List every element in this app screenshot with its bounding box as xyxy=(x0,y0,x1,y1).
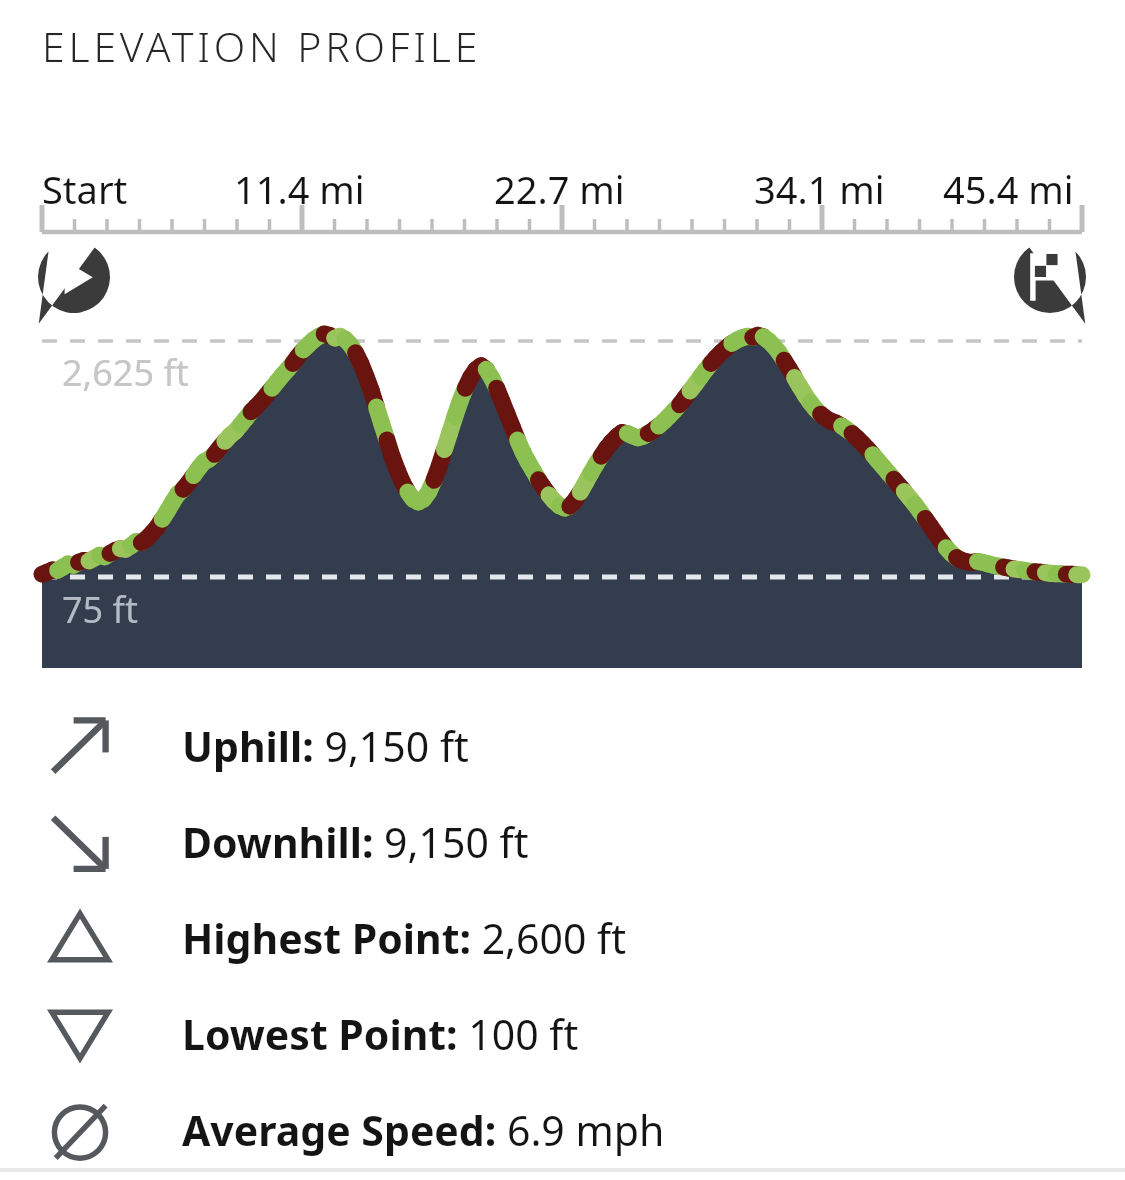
other: Average Speed xyxy=(48,1098,112,1162)
staticText: Uphill: 9,150 ft xyxy=(182,718,469,774)
other: Lowest Point xyxy=(48,1002,112,1066)
button[interactable]: Lowest Point xyxy=(0,986,1125,1082)
staticText: 34.1 mi xyxy=(754,163,885,215)
staticText: Downhill: 9,150 ft xyxy=(182,814,529,870)
staticText: 75 ft xyxy=(62,585,138,634)
button[interactable]: Uphill xyxy=(0,698,1125,794)
staticText: Average Speed: 6.9 mph xyxy=(182,1102,665,1158)
staticText: ELEVATION PROFILE xyxy=(42,18,482,74)
staticText: Highest Point: 2,600 ft xyxy=(182,910,627,966)
button[interactable]: Highest Point xyxy=(0,890,1125,986)
staticText: Start xyxy=(42,163,128,215)
staticText: 45.4 mi xyxy=(943,163,1074,215)
staticText: 2,625 ft xyxy=(62,348,189,397)
button[interactable]: Average Speed xyxy=(0,1082,1125,1178)
staticText: 11.4 mi xyxy=(234,163,365,215)
other: Highest Point xyxy=(48,906,112,970)
other: Downhill xyxy=(48,810,112,874)
button[interactable]: Downhill xyxy=(0,794,1125,890)
staticText: 22.7 mi xyxy=(494,163,625,215)
button[interactable]: ELEVATION PROFILE xyxy=(42,18,562,74)
other: Uphill xyxy=(48,714,112,778)
staticText: Lowest Point: 100 ft xyxy=(182,1006,579,1062)
